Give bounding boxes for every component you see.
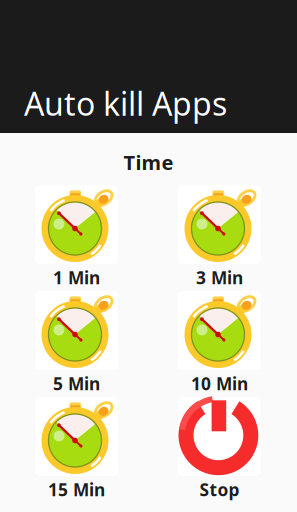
staticText: Time: [123, 149, 173, 176]
staticText: 15 Min: [48, 478, 105, 501]
staticText: Auto kill Apps: [24, 82, 227, 124]
staticText: 1 Min: [53, 266, 100, 289]
staticText: 5 Min: [53, 372, 100, 395]
staticText: 3 Min: [196, 266, 243, 289]
button[interactable]: 10 Min: [178, 291, 261, 397]
staticText: 10 Min: [191, 372, 248, 395]
button[interactable]: 15 Min: [35, 397, 118, 503]
button[interactable]: 3 Min: [178, 185, 261, 291]
button[interactable]: Stop: [178, 397, 261, 503]
button[interactable]: 5 Min: [35, 291, 118, 397]
staticText: Stop: [199, 478, 239, 501]
button[interactable]: 1 Min: [35, 185, 118, 291]
